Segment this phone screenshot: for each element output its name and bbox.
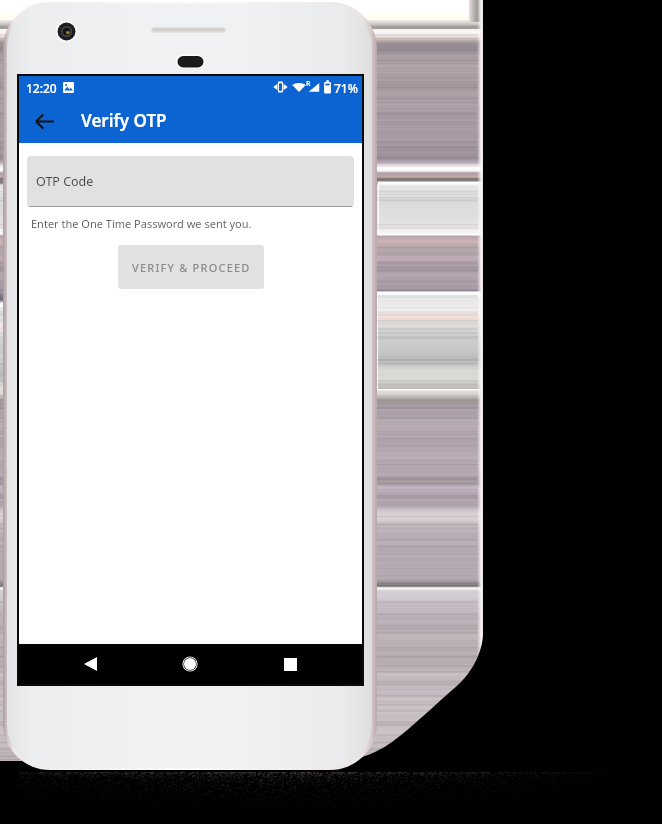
staticText: R (306, 79, 311, 89)
button[interactable]: OTP Code (27, 156, 354, 207)
staticText: 71% (334, 80, 358, 96)
button[interactable]: Recent apps (264, 644, 316, 684)
staticText: Verify OTP (81, 109, 167, 132)
button[interactable]: Home (164, 644, 216, 684)
staticText: 12:20 (26, 80, 57, 96)
button[interactable]: VERIFY & PROCEED (118, 245, 264, 289)
button[interactable]: Back (26, 103, 62, 139)
button[interactable]: Back (64, 644, 116, 684)
staticText: VERIFY & PROCEED (132, 260, 251, 275)
staticText: OTP Code (36, 173, 94, 190)
staticText: Enter the One Time Password we sent you. (31, 216, 252, 231)
